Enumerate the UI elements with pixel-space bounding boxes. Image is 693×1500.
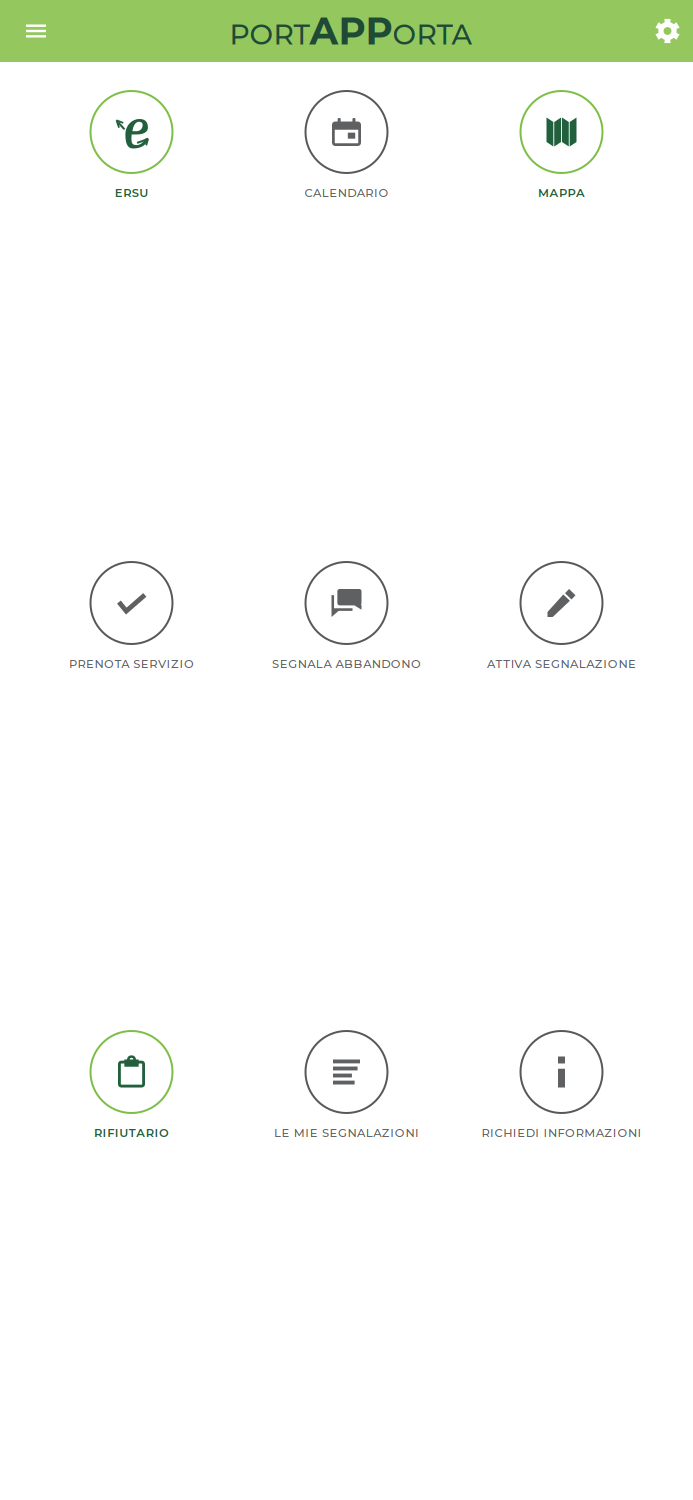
button[interactable]: RIFIUTARIO	[24, 1031, 239, 1140]
button[interactable]: CALENDARIO	[239, 91, 454, 200]
button[interactable]: Menu	[0, 0, 64, 61]
button[interactable]: Settings	[637, 0, 693, 61]
button[interactable]: ERSU	[24, 91, 239, 200]
staticText: ERSU	[115, 186, 148, 200]
staticText: MAPPA	[538, 186, 585, 200]
staticText: APP	[309, 8, 392, 54]
button[interactable]: PRENOTA SERVIZIO	[24, 562, 239, 671]
staticText: LE MIE SEGNALAZIONI	[274, 1126, 419, 1140]
button[interactable]: SEGNALA ABBANDONO	[239, 562, 454, 671]
staticText: PRENOTA SERVIZIO	[69, 657, 194, 671]
staticText: PORT	[229, 17, 309, 51]
staticText: ORTA	[392, 17, 471, 51]
button[interactable]: ATTIVA SEGNALAZIONE	[454, 562, 669, 671]
staticText: CALENDARIO	[304, 186, 388, 200]
staticText: SEGNALA ABBANDONO	[272, 657, 421, 671]
staticText: RICHIEDI INFORMAZIONI	[481, 1126, 641, 1140]
button[interactable]: LE MIE SEGNALAZIONI	[239, 1031, 454, 1140]
button[interactable]: MAPPA	[454, 91, 669, 200]
staticText: RIFIUTARIO	[94, 1126, 169, 1140]
staticText: ATTIVA SEGNALAZIONE	[487, 657, 636, 671]
button[interactable]: RICHIEDI INFORMAZIONI	[454, 1031, 669, 1140]
